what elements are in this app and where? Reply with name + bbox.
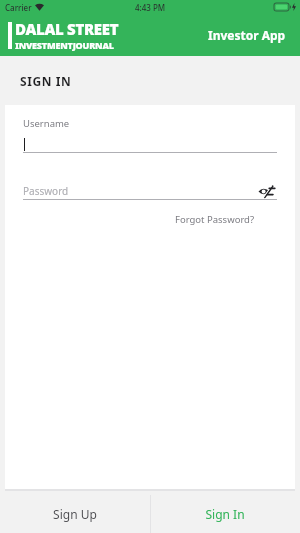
staticText: Sign In (205, 506, 245, 522)
staticText: Sign Up (53, 506, 97, 522)
button[interactable]: Forgot Password? (135, 211, 295, 228)
staticText: Investor App (208, 27, 286, 43)
staticText: Carrier (5, 2, 32, 13)
staticText: INVESTMENTJOURNAL (15, 39, 114, 51)
button[interactable]: Username (5, 117, 295, 153)
staticText: SIGN IN (20, 73, 72, 89)
button[interactable]: Sign In (150, 495, 300, 533)
button[interactable]: Sign Up (0, 495, 150, 533)
button[interactable]: Password (23, 184, 69, 198)
staticText: Forgot Password? (175, 213, 255, 226)
staticText: Username (23, 117, 70, 130)
button[interactable]: Show password (255, 183, 277, 199)
staticText: DALAL STREET (15, 19, 119, 39)
staticText: 4:43 PM (135, 2, 166, 13)
